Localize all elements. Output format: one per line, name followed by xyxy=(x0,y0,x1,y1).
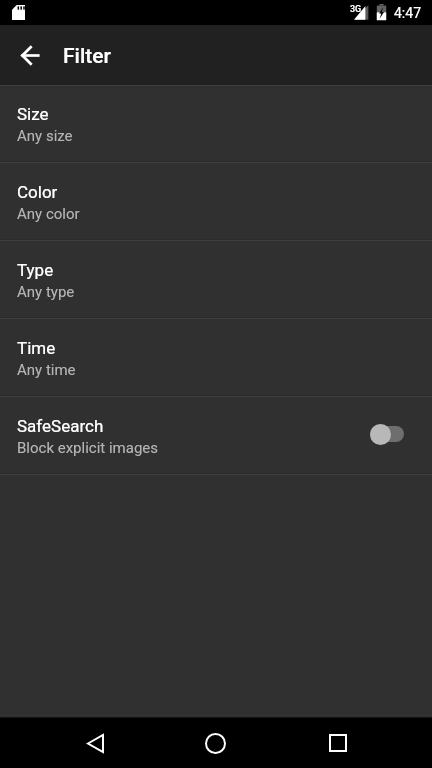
staticText: Filter xyxy=(63,44,111,69)
button[interactable]: Size xyxy=(0,85,432,161)
staticText: Color xyxy=(17,182,58,202)
staticText: Type xyxy=(17,260,54,280)
button[interactable]: Type xyxy=(0,241,432,317)
staticText: SafeSearch xyxy=(17,416,104,436)
staticText: Any size xyxy=(17,127,73,145)
button[interactable]: Back xyxy=(71,719,119,767)
button[interactable]: SafeSearch xyxy=(0,397,432,473)
staticText: Time xyxy=(17,338,56,358)
staticText: 3G xyxy=(350,4,362,15)
button[interactable]: Home xyxy=(191,719,239,767)
staticText: 4:47 xyxy=(394,5,421,21)
button[interactable]: Time xyxy=(0,319,432,395)
button[interactable]: Recents xyxy=(314,719,362,767)
staticText: Any color xyxy=(17,205,80,223)
staticText: Any type xyxy=(17,283,75,301)
button[interactable]: SafeSearch toggle xyxy=(370,414,412,454)
staticText: Size xyxy=(17,104,49,124)
staticText: Block explicit images xyxy=(17,439,159,457)
button[interactable]: Back xyxy=(11,36,49,74)
staticText: Any time xyxy=(17,361,76,379)
button[interactable]: Color xyxy=(0,163,432,239)
